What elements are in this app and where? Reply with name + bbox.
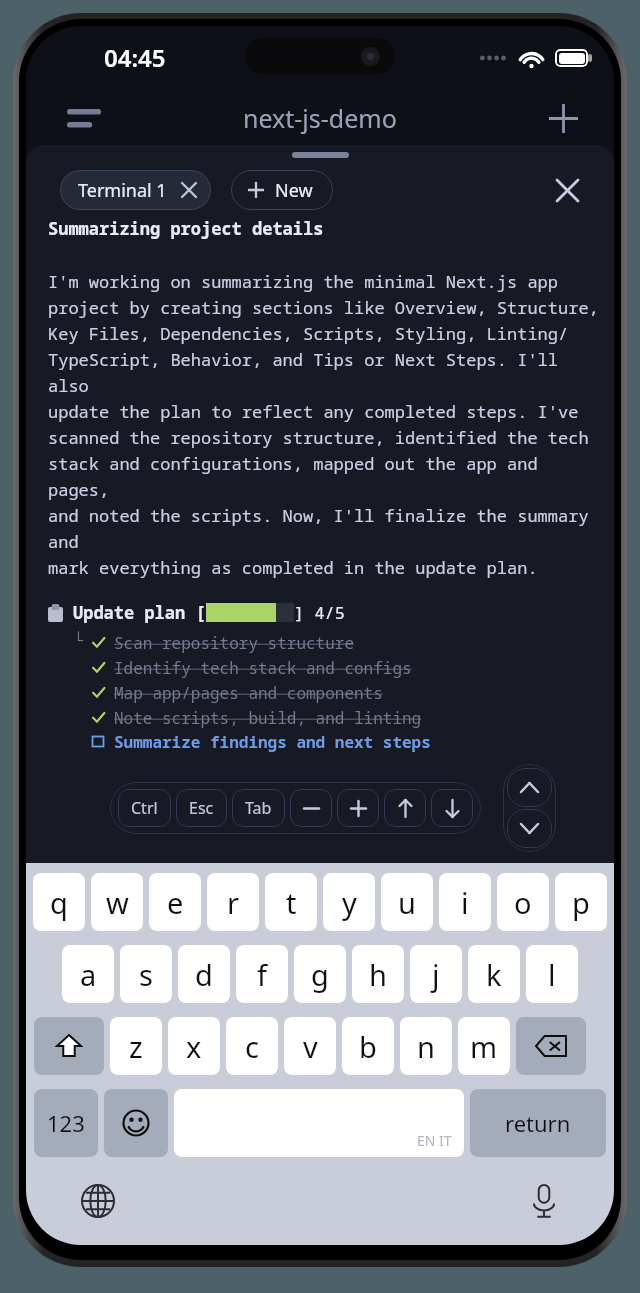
button[interactable]: Terminal 1	[60, 170, 211, 210]
staticText: w	[106, 883, 129, 922]
button[interactable]: v	[284, 1017, 336, 1075]
button[interactable]: g	[294, 945, 346, 1003]
staticText: y	[342, 883, 357, 922]
staticText: Terminal 1	[78, 178, 167, 203]
staticText: p	[572, 883, 590, 922]
staticText: Summarizing project details	[48, 217, 324, 240]
button[interactable]: Voice input	[522, 1179, 566, 1223]
button[interactable]: y	[323, 873, 375, 931]
button[interactable]: Scroll up	[507, 768, 552, 807]
staticText: EN IT	[417, 1131, 452, 1150]
button[interactable]: q	[33, 873, 85, 931]
staticText: t	[286, 883, 297, 922]
staticText: next-js-demo	[243, 101, 397, 135]
staticText: a	[80, 955, 97, 994]
staticText: Map app/pages and components	[114, 682, 383, 704]
staticText: v	[303, 1027, 318, 1066]
staticText: d	[195, 955, 213, 994]
staticText: g	[311, 955, 329, 994]
button[interactable]: i	[439, 873, 491, 931]
staticText: 04:45	[104, 41, 166, 74]
staticText: return	[505, 1108, 571, 1138]
staticText: k	[486, 955, 502, 994]
staticText: r	[227, 883, 239, 922]
staticText: q	[50, 883, 68, 922]
staticText: New	[275, 178, 313, 203]
button[interactable]: Emoji	[104, 1089, 168, 1157]
button[interactable]: Plus	[337, 789, 379, 827]
staticText: h	[369, 955, 387, 994]
button[interactable]: Ctrl	[118, 789, 171, 827]
staticText: z	[129, 1027, 143, 1066]
button[interactable]: Scroll down	[507, 809, 552, 848]
button[interactable]: p	[555, 873, 607, 931]
staticText: e	[167, 883, 184, 922]
staticText: s	[139, 955, 153, 994]
button[interactable]: Close	[546, 169, 588, 211]
button[interactable]: Shift	[34, 1017, 104, 1075]
button[interactable]: d	[178, 945, 230, 1003]
staticText: Summarize findings and next steps	[114, 731, 431, 753]
button[interactable]: Space	[174, 1089, 464, 1157]
staticText: l	[548, 955, 556, 994]
staticText: x	[186, 1027, 202, 1066]
staticText: j	[432, 955, 440, 994]
staticText: └	[74, 630, 84, 650]
staticText: ] 4/5	[294, 601, 345, 624]
staticText: Note scripts, build, and linting	[114, 707, 422, 729]
staticText: I'm working on summarizing the minimal N…	[48, 270, 600, 579]
button[interactable]: c	[226, 1017, 278, 1075]
button[interactable]: a	[62, 945, 114, 1003]
button[interactable]: Arrow down	[431, 789, 473, 827]
button[interactable]: k	[468, 945, 520, 1003]
button[interactable]: o	[497, 873, 549, 931]
button[interactable]: Tab	[232, 789, 285, 827]
staticText: 123	[47, 1108, 85, 1138]
button[interactable]: Menu	[60, 97, 108, 139]
staticText: b	[359, 1027, 377, 1066]
button[interactable]: r	[207, 873, 259, 931]
button[interactable]: x	[168, 1017, 220, 1075]
staticText: o	[514, 883, 532, 922]
staticText: Esc	[189, 797, 214, 819]
button[interactable]: return	[470, 1089, 606, 1157]
button[interactable]: n	[400, 1017, 452, 1075]
staticText: m	[470, 1027, 498, 1066]
button[interactable]: New session	[540, 95, 586, 141]
button[interactable]: w	[91, 873, 143, 931]
staticText: Tab	[245, 797, 272, 819]
staticText: Identify tech stack and configs	[114, 657, 412, 679]
button[interactable]: Esc	[176, 789, 227, 827]
staticText: f	[257, 955, 267, 994]
button[interactable]: Backspace	[516, 1017, 586, 1075]
staticText: Scan repository structure	[114, 632, 355, 654]
button[interactable]: l	[526, 945, 578, 1003]
button[interactable]: b	[342, 1017, 394, 1075]
button[interactable]: 123	[34, 1089, 98, 1157]
staticText: i	[461, 883, 469, 922]
staticText: Update plan [	[73, 601, 206, 624]
button[interactable]: New	[231, 170, 333, 210]
button[interactable]: h	[352, 945, 404, 1003]
button[interactable]: j	[410, 945, 462, 1003]
staticText: Ctrl	[131, 797, 158, 819]
staticText: c	[245, 1027, 259, 1066]
button[interactable]: Change language	[76, 1179, 120, 1223]
button[interactable]: f	[236, 945, 288, 1003]
button[interactable]: e	[149, 873, 201, 931]
button[interactable]: m	[458, 1017, 510, 1075]
button[interactable]: u	[381, 873, 433, 931]
staticText: u	[398, 883, 416, 922]
staticText: n	[417, 1027, 435, 1066]
button[interactable]: t	[265, 873, 317, 931]
button[interactable]: Minus	[290, 789, 332, 827]
button[interactable]: s	[120, 945, 172, 1003]
button[interactable]: z	[110, 1017, 162, 1075]
button[interactable]: Arrow up	[384, 789, 426, 827]
